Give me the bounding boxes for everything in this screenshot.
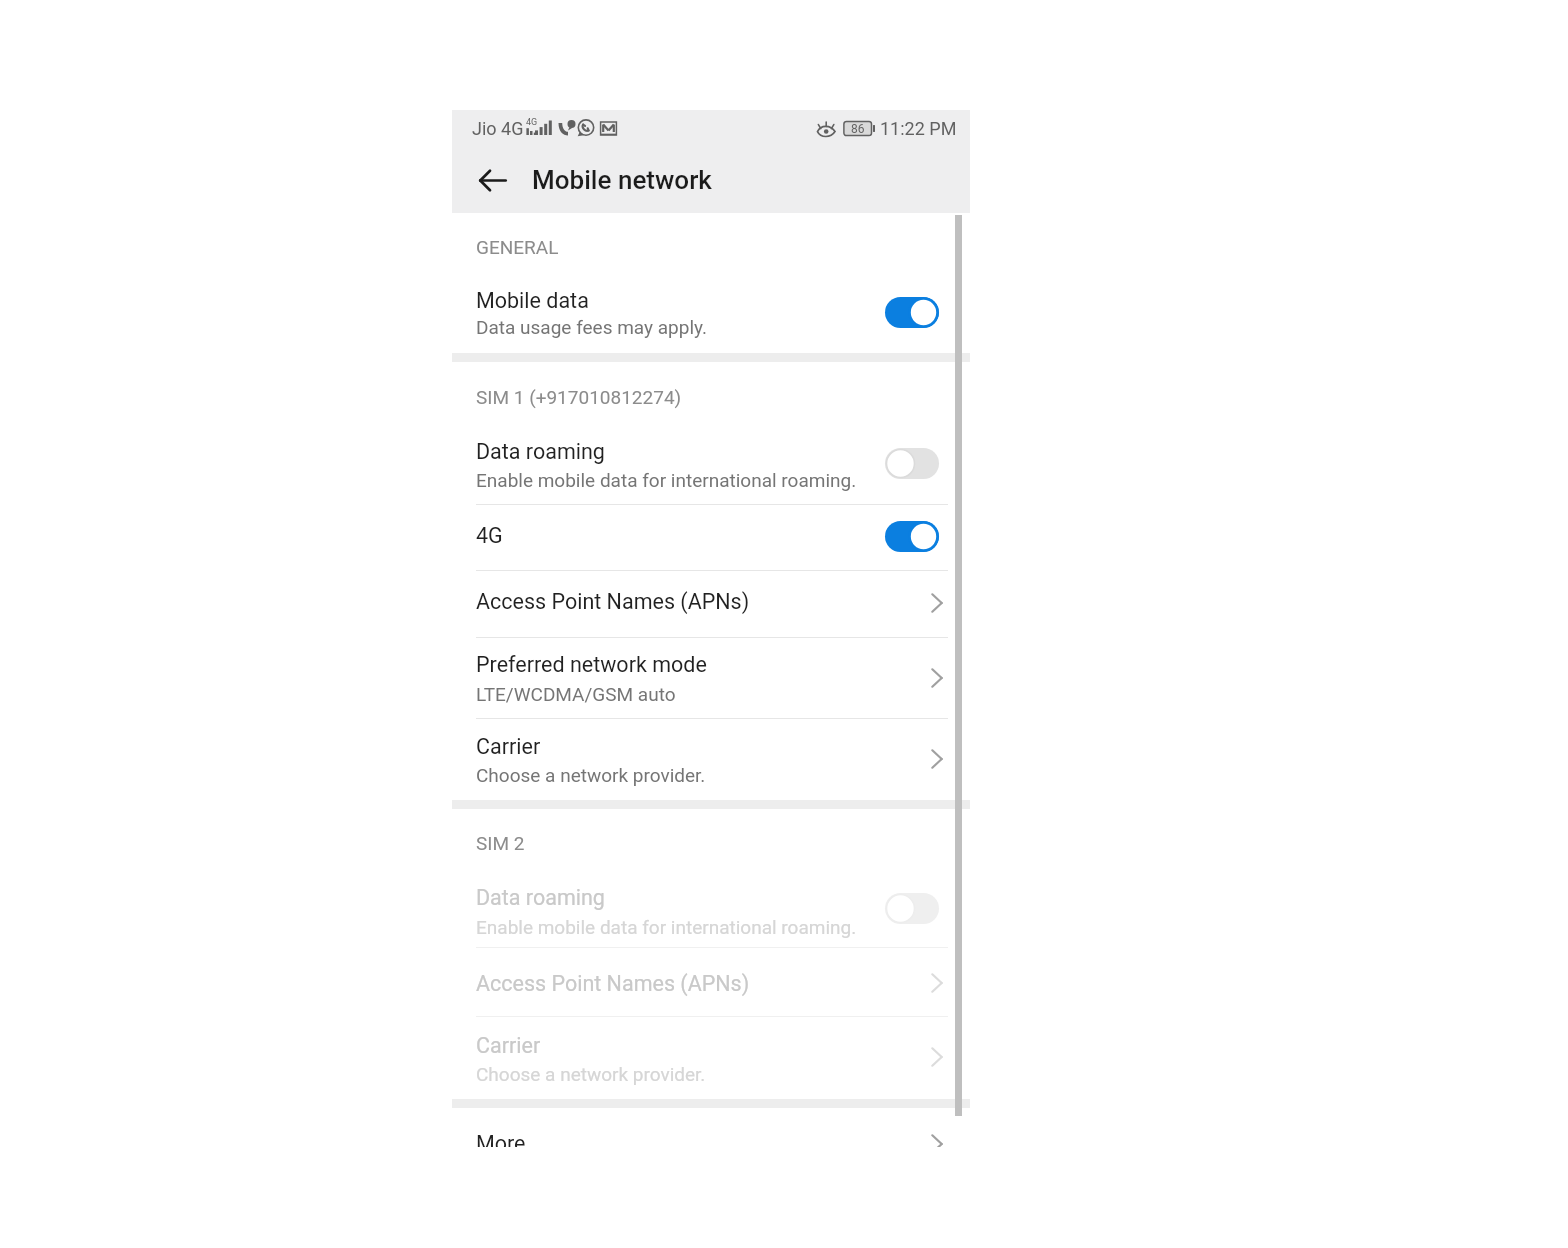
staticText: Jio 4G [472,118,524,139]
staticText: Choose a network provider. [476,764,706,786]
staticText: Access Point Names (APNs) [476,971,750,996]
staticText: 4G [476,523,503,548]
button[interactable]: More [452,1107,970,1147]
staticText: Carrier [476,1033,541,1058]
staticText: Access Point Names (APNs) [476,589,750,614]
staticText: Enable mobile data for international roa… [476,916,857,938]
button[interactable]: Carrier [452,1016,970,1100]
staticText: More [476,1131,526,1147]
staticText: GENERAL [476,236,559,258]
staticText: Choose a network provider. [476,1063,706,1085]
button[interactable]: Access Point Names (APNs) [452,570,970,637]
button[interactable]: Data roaming [452,862,970,947]
staticText: 11:22 PM [880,118,957,139]
button[interactable]: Navigate up [464,152,521,209]
button[interactable]: Access Point Names (APNs) [452,947,970,1016]
staticText: SIM 2 [476,832,525,854]
staticText: LTE/WCDMA/GSM auto [476,683,676,705]
button[interactable]: Data roaming [452,415,970,504]
staticText: 86 [851,122,865,136]
button[interactable]: Carrier [452,718,970,800]
staticText: Mobile network [532,165,712,195]
staticText: Data roaming [476,439,605,464]
staticText: SIM 1 (+917010812274) [476,386,682,408]
staticText: Carrier [476,734,541,759]
staticText: Preferred network mode [476,652,707,677]
button[interactable]: Preferred network mode [452,637,970,718]
staticText: Enable mobile data for international roa… [476,469,857,491]
staticText: 4G [526,117,538,128]
button[interactable]: Mobile data [452,265,970,353]
staticText: Mobile data [476,288,589,313]
staticText: Data roaming [476,885,605,910]
staticText: Data usage fees may apply. [476,316,708,338]
button[interactable]: 4G [452,504,970,571]
